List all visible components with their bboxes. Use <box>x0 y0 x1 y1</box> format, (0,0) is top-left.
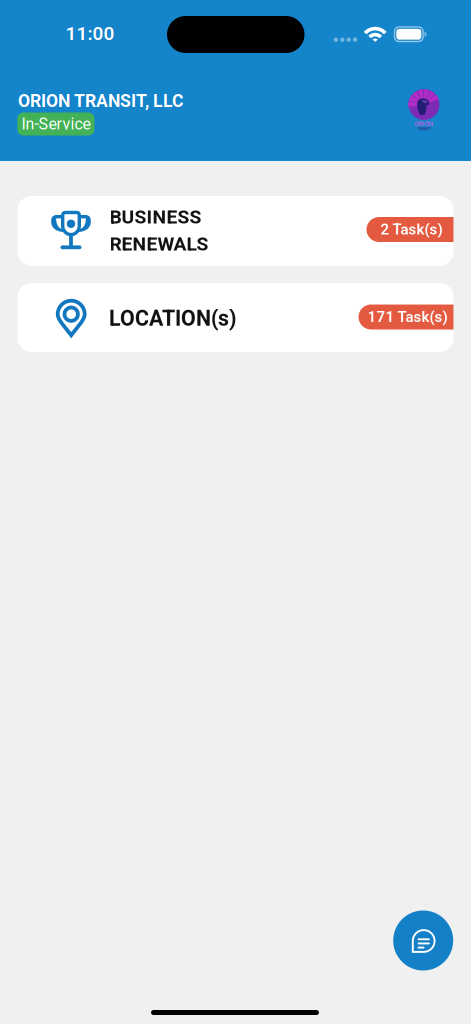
button[interactable]: LOCATION(s) <box>17 283 453 352</box>
button[interactable]: Messages <box>393 910 453 970</box>
staticText: RENEWALS <box>109 233 208 255</box>
staticText: ORION <box>414 120 433 128</box>
staticText: 11:00 <box>65 22 114 45</box>
staticText: TRANSIT <box>417 127 430 131</box>
staticText: In-Service <box>21 115 90 133</box>
button[interactable]: BUSINESS <box>17 196 453 266</box>
staticText: 171 Task(s) <box>367 308 447 326</box>
staticText: BUSINESS <box>109 206 201 228</box>
staticText: LOCATION(s) <box>109 306 236 331</box>
staticText: ORION TRANSIT, LLC <box>18 91 184 111</box>
staticText: 2 Task(s) <box>380 221 442 238</box>
